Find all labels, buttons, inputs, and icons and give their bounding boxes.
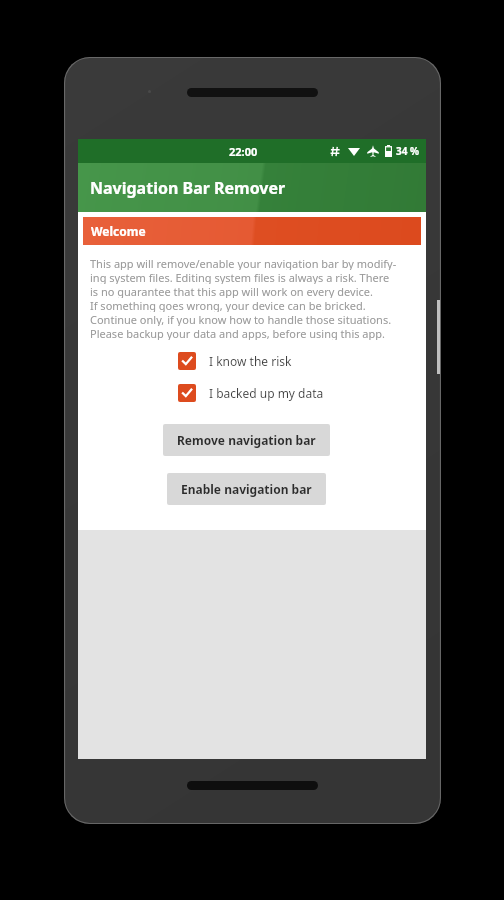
staticText: Continue only, if you know how to handle… [90,312,392,326]
staticText: Enable navigation bar [181,481,312,497]
staticText: ing system files. Editing system files i… [90,270,390,284]
staticText: Navigation Bar Remover [90,177,286,199]
button[interactable]: I backed up my data [83,384,421,402]
staticText: Please backup your data and apps, before… [90,326,385,340]
staticText: This app will remove/enable your navigat… [90,256,397,270]
button[interactable]: I know the risk [83,352,421,370]
staticText: is no guarantee that this app will work … [90,284,373,298]
button[interactable]: Remove navigation bar [163,424,330,456]
staticText: If something goes wrong, your device can… [90,298,366,312]
staticText: 22:00 [229,144,258,159]
staticText: I know the risk [209,353,292,369]
button[interactable]: Enable navigation bar [167,473,326,505]
staticText: I backed up my data [209,385,324,401]
staticText: Welcome [91,223,146,239]
staticText: Remove navigation bar [177,432,316,448]
staticText: 34 % [396,144,420,158]
